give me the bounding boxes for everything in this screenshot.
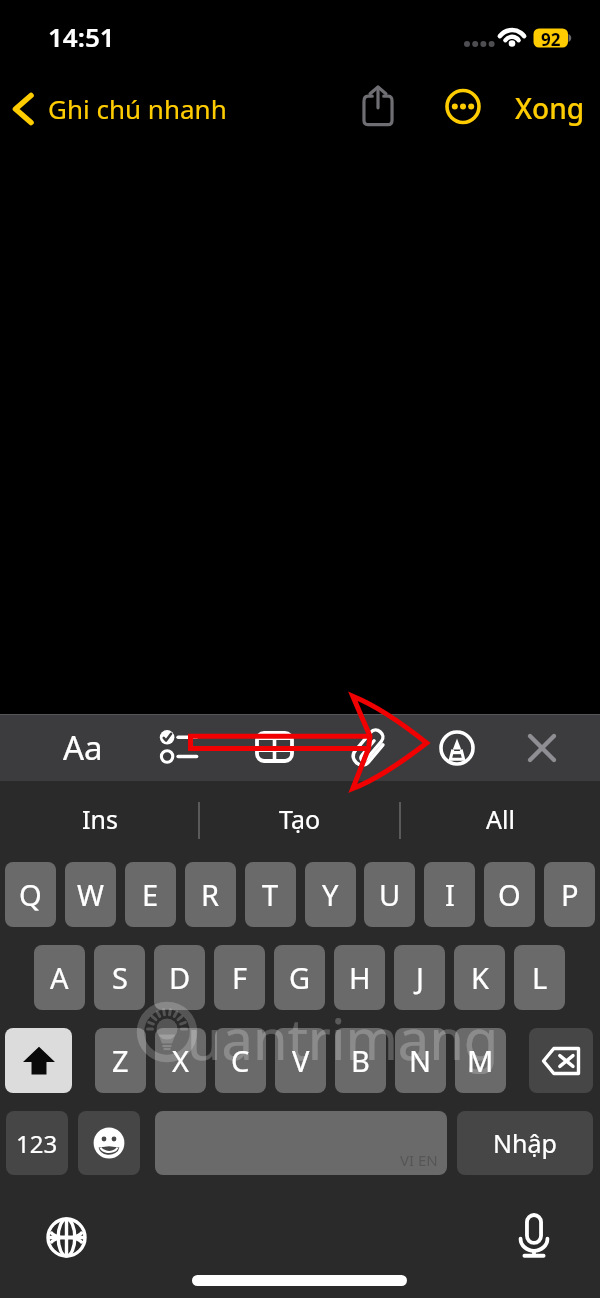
staticText: Tạo [279, 802, 321, 836]
staticText: P [561, 875, 579, 914]
staticText: H [349, 958, 371, 997]
button[interactable]: Backspace [529, 1028, 593, 1093]
button[interactable]: X [155, 1028, 206, 1093]
button[interactable]: O [484, 862, 535, 927]
staticText: E [142, 875, 159, 914]
button[interactable]: Close [512, 714, 572, 781]
button[interactable]: Checklist [152, 728, 200, 768]
staticText: Nhập [493, 1126, 557, 1160]
button[interactable]: K [454, 945, 505, 1010]
button[interactable]: D [154, 945, 205, 1010]
staticText: 92 [541, 28, 561, 48]
staticText: V [292, 1041, 310, 1080]
button[interactable]: M [455, 1028, 506, 1093]
button[interactable]: W [65, 862, 116, 927]
staticText: Ins [82, 802, 118, 836]
staticText: S [112, 958, 128, 997]
staticText: K [471, 958, 489, 997]
button[interactable]: Markup [424, 714, 490, 781]
button[interactable]: B [335, 1028, 386, 1093]
button[interactable]: E [125, 862, 176, 927]
staticText: I [445, 875, 455, 914]
button[interactable]: Aa [48, 714, 118, 781]
staticText: G [289, 958, 311, 997]
staticText: 14:51 [48, 19, 115, 54]
button[interactable]: Ins [0, 781, 200, 856]
staticText: Xong [515, 89, 585, 127]
button[interactable]: Tạo [200, 781, 400, 856]
staticText: Y [322, 875, 339, 914]
button[interactable]: I [424, 862, 475, 927]
staticText: O [498, 875, 521, 914]
button[interactable]: Xong [505, 76, 595, 140]
staticText: VI EN [400, 1150, 438, 1170]
staticText: A [50, 958, 69, 997]
button[interactable]: V [275, 1028, 326, 1093]
staticText: R [201, 875, 220, 914]
button[interactable]: Z [95, 1028, 146, 1093]
staticText: T [262, 875, 279, 914]
button[interactable]: Ghi chú nhanh [8, 76, 227, 140]
staticText: 123 [16, 1127, 58, 1160]
staticText: Aa [63, 725, 103, 770]
button[interactable]: Change keyboard [37, 1208, 95, 1266]
button[interactable]: L [514, 945, 565, 1010]
button[interactable]: 123 [6, 1111, 68, 1175]
button[interactable]: S [94, 945, 145, 1010]
button[interactable]: T [245, 862, 296, 927]
button[interactable]: Space [155, 1111, 447, 1175]
staticText: D [169, 958, 191, 997]
staticText: Ghi chú nhanh [48, 91, 227, 126]
button[interactable]: A [34, 945, 85, 1010]
button[interactable]: Dictation [505, 1206, 563, 1264]
button[interactable]: J [394, 945, 445, 1010]
button[interactable]: U [364, 862, 415, 927]
staticText: All [486, 802, 515, 836]
button[interactable]: More options [433, 73, 493, 137]
staticText: L [532, 958, 548, 997]
button[interactable]: F [214, 945, 265, 1010]
staticText: U [379, 875, 401, 914]
staticText: Z [112, 1041, 129, 1080]
staticText: F [232, 958, 248, 997]
staticText: Q [19, 875, 42, 914]
button[interactable]: H [334, 945, 385, 1010]
staticText: X [172, 1041, 189, 1080]
staticText: M [467, 1041, 494, 1080]
button[interactable]: Q [5, 862, 56, 927]
staticText: W [77, 875, 104, 914]
button[interactable]: Shift [5, 1028, 72, 1093]
button[interactable]: Y [305, 862, 356, 927]
staticText: B [351, 1041, 370, 1080]
button[interactable]: G [274, 945, 325, 1010]
staticText: J [416, 958, 424, 997]
button[interactable]: Emoji [78, 1111, 140, 1175]
button[interactable]: Share [352, 73, 404, 137]
staticText: C [231, 1041, 250, 1080]
button[interactable]: P [544, 862, 595, 927]
staticText: N [409, 1041, 432, 1080]
button[interactable]: R [185, 862, 236, 927]
staticText: uantrimang [187, 1000, 499, 1076]
button[interactable]: C [215, 1028, 266, 1093]
button[interactable]: Table [255, 731, 294, 763]
button[interactable]: Nhập [457, 1111, 593, 1175]
button[interactable]: All [400, 781, 600, 856]
button[interactable]: N [395, 1028, 446, 1093]
button[interactable]: Attach [348, 727, 388, 769]
